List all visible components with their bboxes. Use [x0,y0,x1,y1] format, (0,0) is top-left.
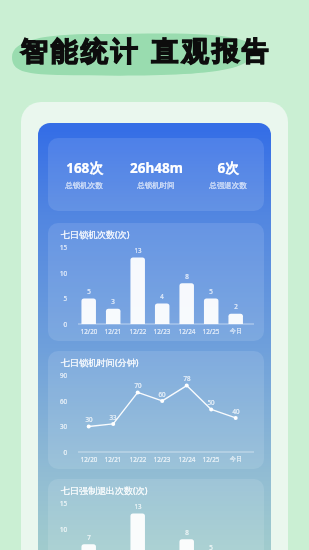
staticText: 总锁机时间 [137,181,175,190]
staticText: 13 [128,246,148,254]
staticText: 13 [128,502,148,510]
staticText: 33 [103,413,123,421]
staticText: 70 [128,381,148,389]
staticText: 总锁机次数 [65,181,103,190]
staticText: 12/24 [175,455,199,463]
staticText: 40 [226,407,246,415]
staticText: 12/20 [77,327,101,335]
staticText: 七日锁机时间(分钟) [61,356,139,368]
staticText: 12/22 [126,455,150,463]
staticText: 12/21 [101,327,125,335]
staticText: 5 [48,294,67,302]
staticText: 今日 [224,327,248,335]
button[interactable]: 七日强制退出次数(次) [48,479,264,550]
staticText: 168次 [66,159,103,177]
staticText: 30 [48,422,67,430]
staticText: 7 [79,533,99,541]
staticText: 10 [48,269,67,277]
staticText: 60 [152,390,172,398]
staticText: 60 [48,397,67,405]
staticText: 12/25 [199,455,223,463]
staticText: 12/20 [77,455,101,463]
staticText: 6次 [217,159,239,177]
staticText: 15 [48,243,67,251]
staticText: 5 [79,287,99,295]
staticText: 12/25 [199,327,223,335]
button[interactable]: 七日锁机次数(次) [48,223,264,341]
staticText: 8 [177,272,197,280]
staticText: 3 [103,297,123,305]
button[interactable]: 168次 [48,138,264,211]
staticText: 12/21 [101,455,125,463]
staticText: 12/22 [126,327,150,335]
staticText: 12/24 [175,327,199,335]
staticText: 26h48m [130,159,183,177]
staticText: 4 [152,292,172,300]
staticText: 0 [48,320,67,328]
staticText: 90 [48,371,67,379]
staticText: 5 [201,287,221,295]
staticText: 10 [48,525,67,533]
staticText: 七日强制退出次数(次) [61,484,148,496]
staticText: 5 [201,543,221,550]
staticText: 12/23 [150,455,174,463]
staticText: 0 [48,448,67,456]
staticText: 78 [177,374,197,382]
staticText: 15 [48,499,67,507]
staticText: 今日 [224,455,248,463]
staticText: 30 [79,415,99,423]
staticText: 2 [226,302,246,310]
staticText: 总强退次数 [209,181,247,190]
button[interactable]: 七日锁机时间(分钟) [48,351,264,469]
staticText: 12/23 [150,327,174,335]
staticText: 七日锁机次数(次) [61,228,130,240]
staticText: 8 [177,528,197,536]
staticText: 50 [201,398,221,406]
